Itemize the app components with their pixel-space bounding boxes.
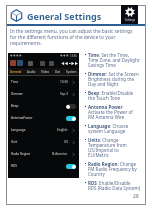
- button[interactable]: Settings: [121, 5, 138, 24]
- staticText: System: [66, 70, 77, 74]
- staticText: Radio Region: [11, 152, 31, 156]
- button[interactable]: Dimmer: [11, 88, 76, 100]
- staticText: Dimmer: Set the Screen Brightness during…: [88, 71, 139, 87]
- staticText: Radio Region: Change FM Radio Frequency …: [88, 161, 137, 177]
- button[interactable]: Audio: [24, 68, 38, 75]
- staticText: Language: [11, 128, 26, 132]
- staticText: General: [10, 70, 22, 74]
- staticText: General Settings: [27, 10, 102, 22]
- staticText: Settings: [125, 18, 135, 22]
- staticText: 29: [133, 193, 139, 200]
- button[interactable]: Time: [11, 76, 76, 88]
- button[interactable]: System: [64, 68, 79, 75]
- staticText: Unit: [11, 140, 18, 144]
- staticText: Dat: [55, 70, 61, 74]
- button[interactable]: Beep: [11, 100, 76, 112]
- button[interactable]: Video: [38, 68, 52, 75]
- staticText: US: [64, 140, 68, 144]
- staticText: Language: Choose system Language: [88, 123, 129, 134]
- staticText: N.America: [52, 152, 68, 156]
- staticText: Video: [41, 70, 50, 74]
- staticText: English: [57, 128, 68, 132]
- staticText: Beep: Enable/Disable the Touch Tone: [88, 90, 134, 101]
- staticText: RDS: Enable/Disable RDS (Radio Data Syst…: [88, 180, 140, 191]
- staticText: 13:36: [70, 54, 77, 58]
- staticText: Units: Change Temperature from US/Imperi…: [88, 137, 127, 158]
- button[interactable]: Dat: [52, 68, 64, 75]
- button[interactable]: RDS: [11, 160, 76, 172]
- staticText: AntennaPower: [11, 116, 33, 120]
- button[interactable]: Language: [11, 124, 76, 136]
- staticText: 13:36: [60, 80, 68, 84]
- button[interactable]: Radio Region: [11, 148, 76, 160]
- staticText: Sep 3: [60, 92, 68, 96]
- button[interactable]: AntennaPower: [11, 112, 76, 124]
- staticText: Dimmer: [11, 92, 23, 96]
- staticText: Beep: [11, 104, 19, 108]
- staticText: In the settings menu, you can adjust the…: [10, 28, 144, 46]
- button[interactable]: General: [8, 68, 24, 75]
- staticText: Time: Set the Time, Time Zone, and Dayli…: [88, 52, 140, 68]
- button[interactable]: Unit: [11, 136, 76, 148]
- staticText: Time: [11, 80, 19, 84]
- staticText: Antenna Power: Activate the Power of FM …: [88, 104, 133, 120]
- staticText: RDS: [11, 164, 17, 168]
- staticText: Audio: [27, 70, 36, 74]
